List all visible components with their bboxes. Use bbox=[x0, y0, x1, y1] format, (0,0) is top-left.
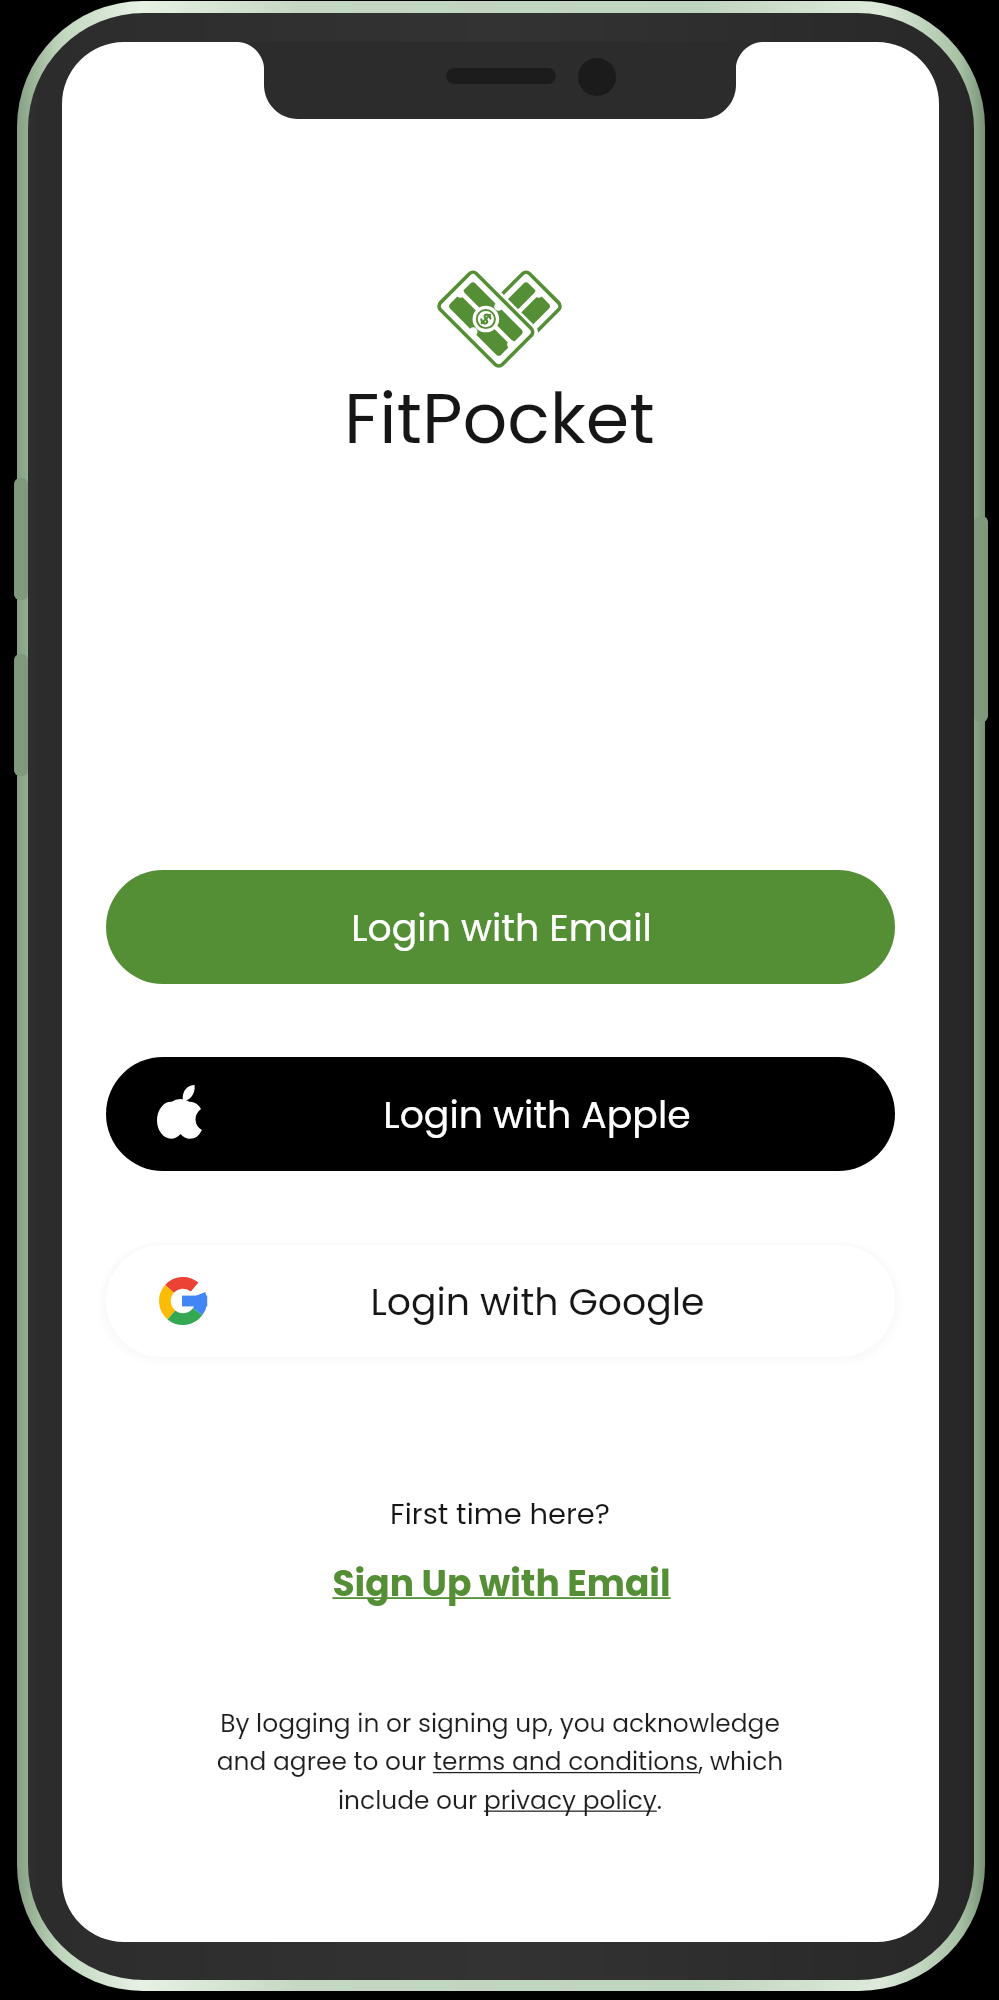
staticText: Login with Apple bbox=[383, 1088, 691, 1141]
staticText: Sign Up with Email bbox=[332, 1558, 671, 1608]
button[interactable] bbox=[106, 870, 895, 984]
staticText: Login with Email bbox=[351, 901, 652, 954]
staticText: First time here? bbox=[390, 1494, 610, 1535]
staticText: FitPocket bbox=[344, 369, 655, 465]
button[interactable] bbox=[106, 1057, 895, 1171]
staticText: By logging in or signing up, you acknowl… bbox=[210, 1706, 790, 1818]
staticText: Login with Google bbox=[370, 1275, 705, 1328]
button[interactable]: Sign Up with Email bbox=[320, 1552, 682, 1614]
button[interactable] bbox=[106, 1245, 895, 1357]
